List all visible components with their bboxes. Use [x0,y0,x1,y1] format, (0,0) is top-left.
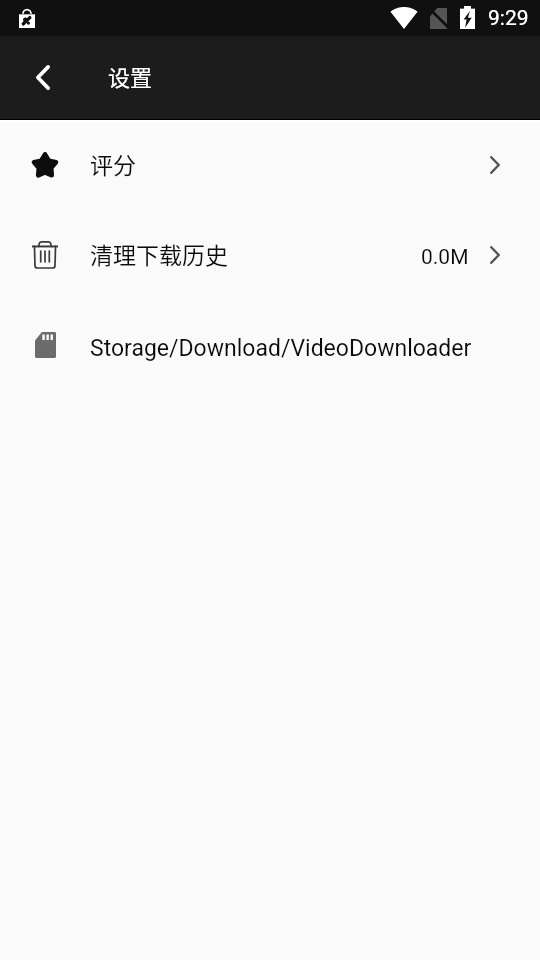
staticText: 0.0M [421,245,469,270]
button[interactable]: Back [0,36,84,120]
staticText: 评分 [90,147,136,180]
button[interactable]: Storage/Download/VideoDownloader [0,300,540,390]
staticText: 清理下载历史 [90,237,228,270]
button[interactable]: 清理下载历史 [0,210,540,300]
staticText: Storage/Download/VideoDownloader [90,335,472,362]
button[interactable]: 评分 [0,120,540,210]
staticText: 设置 [108,60,153,92]
staticText: 9:29 [488,6,529,31]
